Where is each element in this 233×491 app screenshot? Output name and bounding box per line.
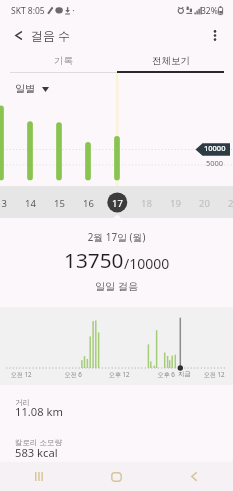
staticText: 일일 걸음 bbox=[0, 279, 233, 293]
button[interactable]: Back bbox=[155, 462, 233, 491]
staticText: 오후 12 bbox=[99, 370, 139, 378]
staticText: SKT 8:05 bbox=[11, 5, 45, 17]
button[interactable]: 14 bbox=[16, 186, 44, 218]
staticText: 18 bbox=[141, 197, 152, 210]
staticText: 20 bbox=[199, 197, 210, 210]
button[interactable]: 기록 bbox=[10, 50, 117, 71]
staticText: 칼로리 소모량 bbox=[15, 437, 62, 447]
button[interactable]: 19 bbox=[161, 186, 189, 218]
staticText: 오후 6 bbox=[146, 370, 186, 378]
button[interactable]: 18 bbox=[132, 186, 160, 218]
staticText: 거리 bbox=[15, 398, 30, 407]
button[interactable]: 칼로리 소모량 bbox=[0, 431, 233, 462]
staticText: 오전 12 bbox=[1, 370, 41, 378]
staticText: /10000 bbox=[124, 254, 170, 273]
button[interactable]: 거리 bbox=[0, 388, 233, 428]
staticText: 지금 bbox=[178, 370, 191, 378]
staticText: 583 kcal bbox=[15, 445, 58, 460]
button[interactable]: 21 bbox=[219, 186, 233, 218]
staticText: 오전 6 bbox=[53, 370, 93, 378]
staticText: 15 bbox=[54, 197, 65, 210]
staticText: 14 bbox=[25, 197, 36, 210]
staticText: 전체보기 bbox=[152, 55, 190, 67]
staticText: 걸음 수 bbox=[31, 27, 71, 43]
staticText: 일별 bbox=[15, 82, 35, 95]
button[interactable]: Home bbox=[77, 462, 155, 491]
button[interactable]: Recent apps bbox=[0, 462, 77, 491]
button[interactable]: 13 bbox=[0, 186, 15, 218]
staticText: 5000 bbox=[206, 158, 224, 168]
staticText: 13750 bbox=[64, 246, 124, 274]
button[interactable]: More options bbox=[202, 22, 228, 48]
staticText: 10000 bbox=[204, 143, 226, 153]
staticText: 17 bbox=[112, 197, 123, 210]
staticText: 11.08 km bbox=[15, 404, 63, 419]
staticText: 19 bbox=[170, 197, 181, 210]
staticText: 21 bbox=[228, 197, 233, 210]
staticText: 기록 bbox=[54, 55, 73, 67]
button[interactable]: 17 bbox=[103, 186, 131, 218]
button[interactable]: Back bbox=[5, 22, 31, 48]
staticText: 2월 17일 (월) bbox=[0, 230, 233, 244]
button[interactable]: 15 bbox=[45, 186, 73, 218]
staticText: 13 bbox=[0, 197, 7, 210]
button[interactable]: 16 bbox=[74, 186, 102, 218]
button[interactable]: 20 bbox=[190, 186, 218, 218]
staticText: 16 bbox=[83, 197, 94, 210]
staticText: 오전 12 bbox=[194, 370, 233, 378]
staticText: 32% bbox=[201, 5, 218, 17]
button[interactable]: 전체보기 bbox=[117, 50, 224, 71]
